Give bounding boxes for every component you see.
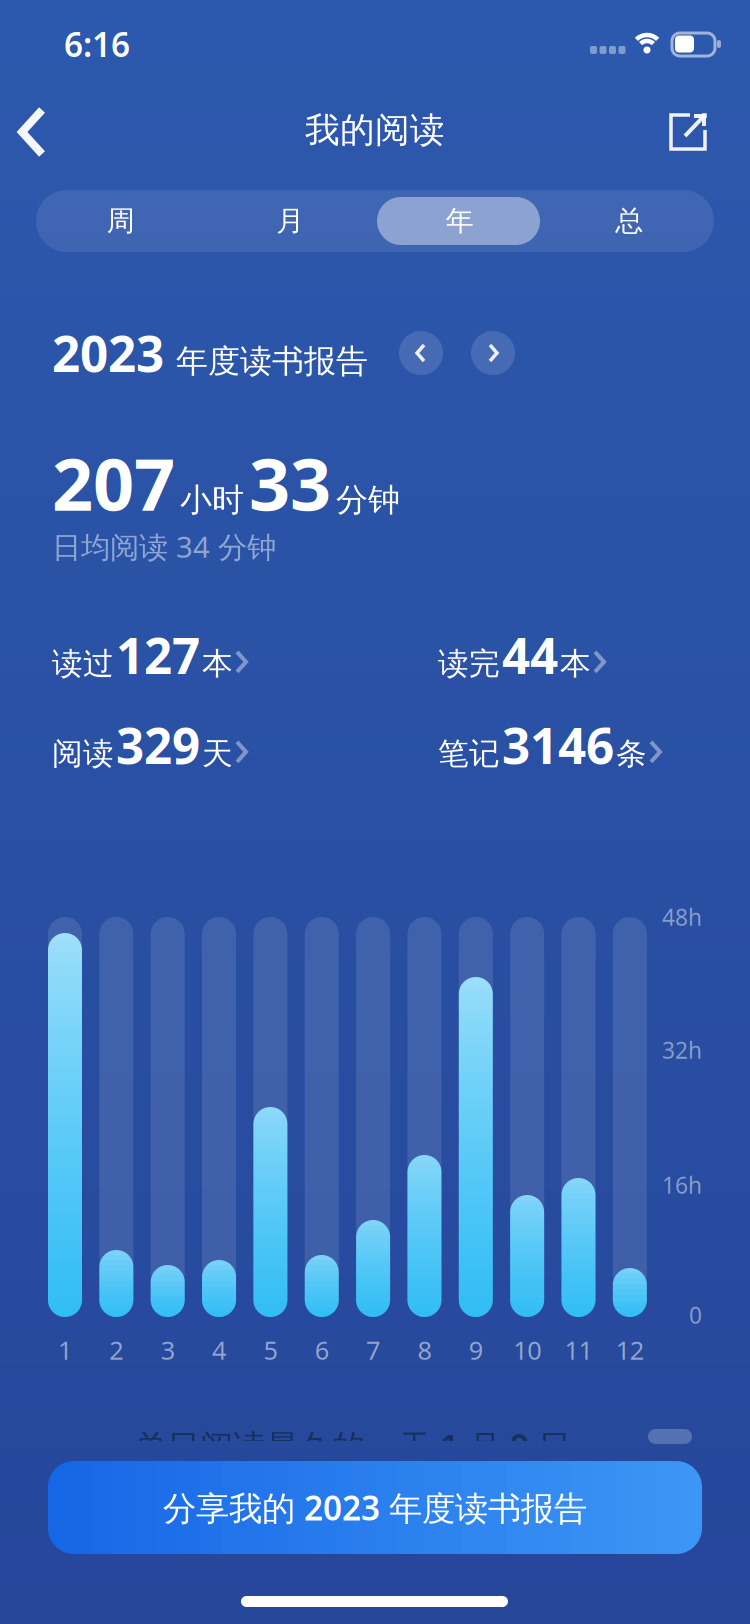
staticText: 周 — [107, 204, 135, 238]
staticText: 44 — [502, 622, 558, 687]
staticText: 本 — [202, 645, 233, 683]
staticText: 单日阅读最久的一天 1 月 9 日 — [134, 1424, 571, 1468]
button[interactable]: 读过 — [52, 622, 249, 687]
staticText: 16h — [662, 1170, 702, 1200]
staticText: 207 — [52, 435, 175, 531]
staticText: 读完 — [438, 645, 500, 683]
staticText: 329 — [116, 712, 200, 777]
staticText: 阅读 — [52, 735, 114, 773]
staticText: 3 — [161, 1333, 175, 1367]
staticText: 9 — [469, 1333, 483, 1367]
staticText: 日均阅读 34 分钟 — [52, 527, 276, 566]
staticText: 我的阅读 — [305, 109, 445, 152]
staticText: 127 — [116, 622, 200, 687]
staticText: 11 — [564, 1333, 592, 1367]
staticText: 读过 — [52, 645, 114, 683]
staticText: 2 — [109, 1333, 123, 1367]
staticText: 4 — [212, 1333, 226, 1367]
button[interactable]: Back — [8, 102, 68, 162]
staticText: 月 — [276, 204, 304, 238]
staticText: 1 — [58, 1333, 72, 1367]
staticText: 7 — [366, 1333, 380, 1367]
staticText: 10 — [513, 1333, 541, 1367]
staticText: 条 — [616, 735, 647, 773]
staticText: 33 — [249, 435, 331, 531]
staticText: 6 — [315, 1333, 329, 1367]
staticText: 3146 — [502, 712, 614, 777]
button[interactable]: 笔记 — [438, 712, 663, 777]
button[interactable]: 月 — [205, 190, 375, 252]
button[interactable]: 读完 — [438, 622, 607, 687]
staticText: 32h — [662, 1035, 702, 1065]
staticText: 总 — [615, 204, 643, 238]
staticText: 分钟 — [336, 480, 400, 520]
staticText: 12 — [616, 1333, 644, 1367]
button[interactable]: 总 — [544, 190, 714, 252]
staticText: 天 — [202, 735, 233, 773]
staticText: 笔记 — [438, 735, 500, 773]
staticText: 0 — [689, 1300, 702, 1330]
staticText: 6:16 — [64, 22, 130, 66]
staticText: 8 — [417, 1333, 431, 1367]
button[interactable]: Next year — [471, 331, 515, 375]
staticText: 年度读书报告 — [176, 342, 368, 381]
button[interactable]: 阅读 — [52, 712, 249, 777]
staticText: 48h — [662, 902, 702, 932]
staticText: 本 — [560, 645, 591, 683]
button[interactable]: Share — [658, 102, 718, 162]
button[interactable]: 年 — [375, 190, 544, 252]
staticText: 5 — [263, 1333, 277, 1367]
button[interactable]: Previous year — [399, 331, 443, 375]
staticText: 年 — [446, 204, 474, 238]
staticText: 2023 — [52, 320, 164, 385]
button[interactable]: 分享我的 2023 年度读书报告 — [48, 1461, 702, 1554]
staticText: 分享我的 2023 年度读书报告 — [163, 1485, 587, 1530]
staticText: 小时 — [180, 480, 244, 520]
button[interactable]: 周 — [36, 190, 205, 252]
